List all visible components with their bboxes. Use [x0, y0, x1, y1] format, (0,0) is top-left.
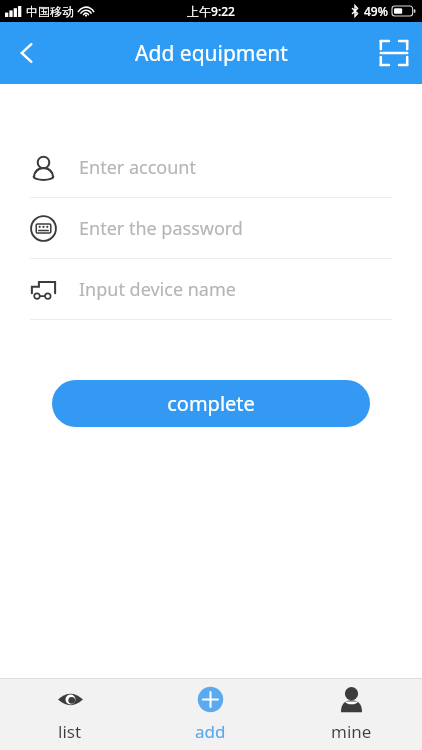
button[interactable]: Scan QR code [366, 25, 422, 81]
staticText: list [58, 720, 82, 743]
staticText: 49% [364, 3, 388, 19]
button[interactable]: list [0, 679, 140, 750]
staticText: add [195, 720, 226, 743]
button[interactable]: mine [281, 679, 422, 750]
staticText: complete [167, 390, 255, 417]
button[interactable]: Back [0, 26, 54, 80]
staticText: Input device name [79, 277, 236, 302]
staticText: 中国移动 [26, 4, 74, 19]
staticText: Enter account [79, 155, 196, 180]
button[interactable]: Enter account [0, 137, 422, 198]
button[interactable]: Enter the password [0, 198, 422, 259]
button[interactable]: complete [52, 380, 370, 427]
staticText: Add equipment [135, 39, 288, 68]
staticText: mine [331, 720, 372, 743]
button[interactable]: add [140, 679, 281, 750]
staticText: 上午9:22 [187, 3, 235, 19]
staticText: Enter the password [79, 216, 243, 241]
button[interactable]: Input device name [0, 259, 422, 320]
